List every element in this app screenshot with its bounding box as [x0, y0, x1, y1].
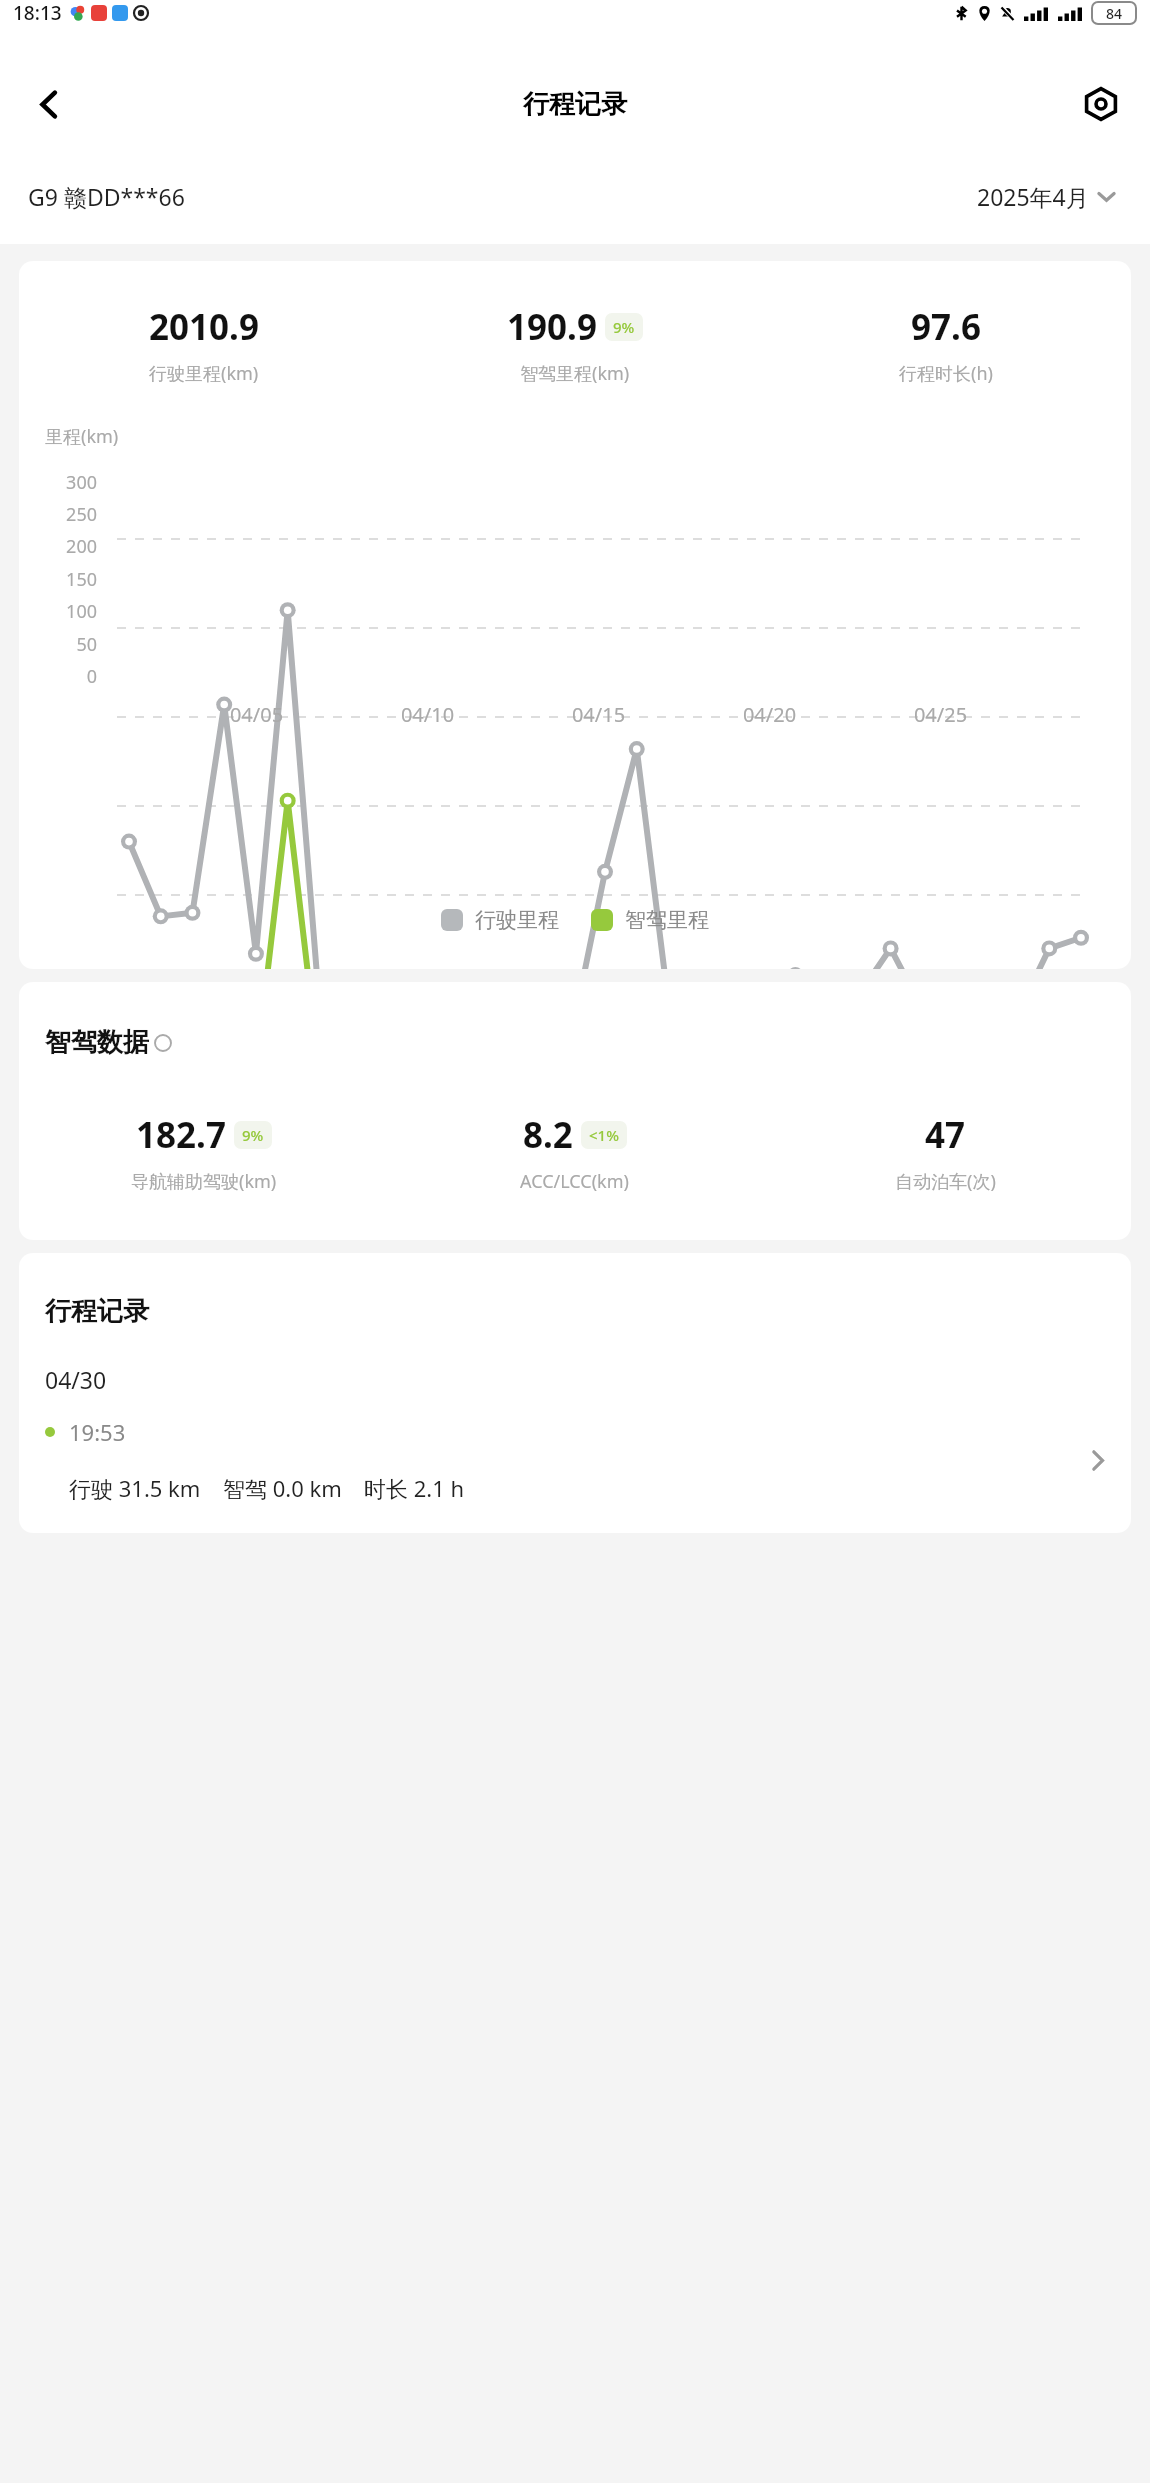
staticText: 9% [242, 1125, 264, 1145]
staticText: 智驾 0.0 km [223, 1473, 342, 1503]
staticText: G9 赣DD***66 [28, 181, 185, 212]
staticText: <1% [589, 1125, 619, 1145]
staticText: 19:53 [69, 1417, 126, 1447]
staticText: 18:13 [13, 0, 62, 26]
staticText: 里程(km) [45, 424, 119, 449]
staticText: 04/05 [171, 701, 342, 728]
staticText: 行程记录 [45, 1295, 149, 1328]
staticText: 行驶 31.5 km [69, 1473, 201, 1503]
staticText: 8.2 [523, 1111, 573, 1159]
staticText: 行驶里程 [475, 907, 559, 933]
staticText: 04/25 [855, 701, 1026, 728]
staticText: 190.9 [507, 303, 597, 351]
staticText: 04/30 [45, 1364, 107, 1395]
staticText: 47 [925, 1111, 966, 1159]
staticText: 84 [1106, 4, 1123, 23]
staticText: 时长 2.1 h [364, 1473, 465, 1503]
staticText: 04/20 [684, 701, 855, 728]
staticText: 智驾里程(km) [520, 361, 630, 386]
staticText: 自动泊车(次) [895, 1169, 996, 1194]
staticText: 04/10 [342, 701, 513, 728]
staticText: 50 [19, 632, 97, 657]
staticText: 导航辅助驾驶(km) [131, 1169, 277, 1194]
staticText: 97.6 [911, 303, 981, 351]
staticText: 行程时长(h) [899, 361, 993, 386]
button[interactable]: Settings [1074, 77, 1128, 131]
button[interactable]: 2025年4月 [971, 175, 1122, 218]
staticText: 2010.9 [149, 303, 259, 351]
staticText: 04/15 [513, 701, 684, 728]
staticText: 182.7 [136, 1111, 226, 1159]
staticText: 0 [19, 664, 97, 689]
staticText: 行驶里程(km) [149, 361, 259, 386]
button[interactable]: Back [22, 77, 76, 131]
staticText: 250 [19, 502, 97, 527]
staticText: 300 [19, 470, 97, 495]
staticText: ACC/LCC(km) [520, 1169, 629, 1194]
staticText: 150 [19, 567, 97, 592]
button[interactable]: 19:53 [19, 1417, 1131, 1503]
staticText: 100 [19, 599, 97, 624]
staticText: 行程记录 [523, 88, 627, 121]
button[interactable]: 智驾数据 [45, 1026, 172, 1059]
staticText: 智驾里程 [625, 907, 709, 933]
staticText: 200 [19, 534, 97, 559]
staticText: 智驾数据 [45, 1026, 149, 1059]
staticText: 9% [613, 317, 635, 337]
staticText: 2025年4月 [977, 181, 1089, 212]
